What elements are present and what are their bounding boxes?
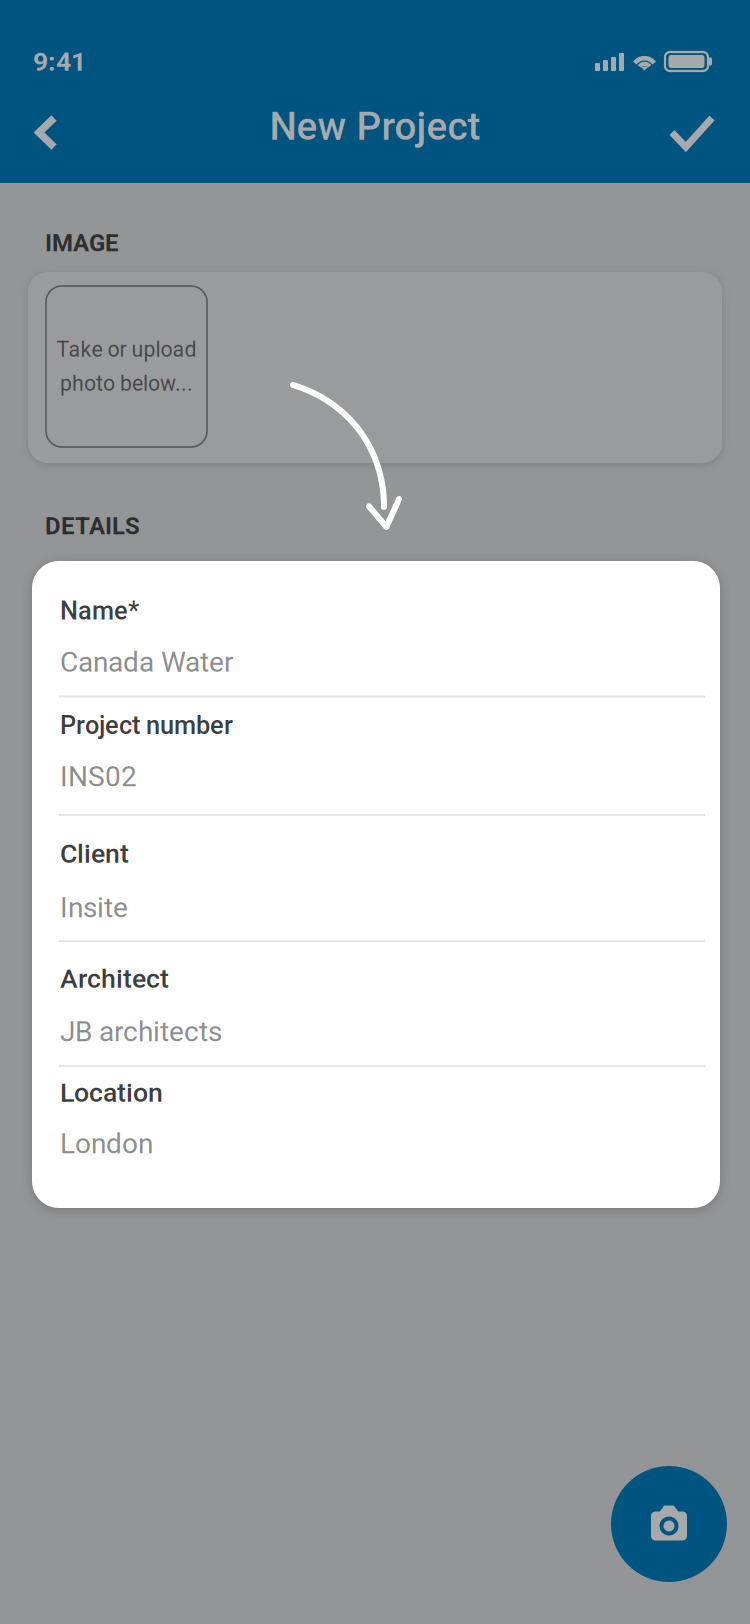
staticText: 9:41 xyxy=(33,46,86,77)
staticText: DETAILS xyxy=(45,512,140,540)
staticText: IMAGE xyxy=(45,229,119,257)
staticText: Client xyxy=(60,838,129,869)
button[interactable]: Location xyxy=(32,1067,720,1209)
staticText: Take or upload xyxy=(56,337,196,362)
staticText: Project number xyxy=(60,710,233,740)
button[interactable]: Save xyxy=(652,98,732,167)
button[interactable]: Project number xyxy=(32,697,720,816)
button[interactable]: Take photo xyxy=(611,1466,727,1582)
button[interactable]: Client xyxy=(32,816,720,942)
button[interactable]: Name* xyxy=(32,561,720,697)
staticText: Name* xyxy=(60,596,139,626)
button[interactable]: Back xyxy=(19,98,74,167)
staticText: INS02 xyxy=(60,760,137,793)
staticText: Architect xyxy=(60,963,169,994)
staticText: London xyxy=(60,1127,153,1160)
staticText: JB architects xyxy=(60,1015,222,1048)
staticText: Insite xyxy=(60,891,128,924)
staticText: Canada Water xyxy=(60,646,233,678)
staticText: Location xyxy=(60,1077,163,1108)
staticText: New Project xyxy=(269,104,480,149)
staticText: photo below... xyxy=(60,371,193,396)
button[interactable]: Architect xyxy=(32,942,720,1067)
